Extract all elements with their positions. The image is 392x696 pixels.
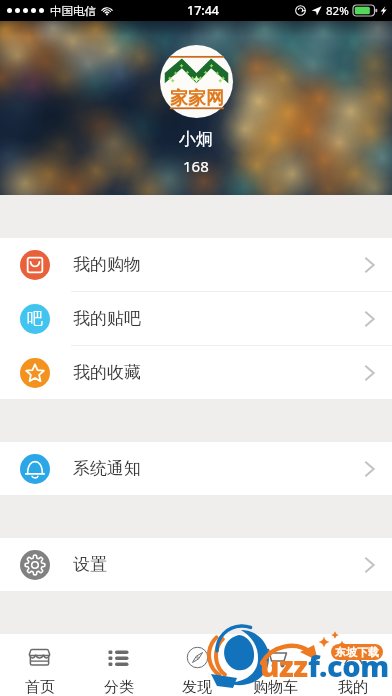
button[interactable]: 首页 — [0, 634, 79, 696]
staticText: 82% — [326, 3, 349, 19]
staticText: 首页 — [25, 678, 55, 696]
button[interactable]: 分类 — [79, 634, 158, 696]
button[interactable]: 我的 — [314, 634, 392, 696]
button[interactable]: 我的收藏 — [0, 346, 392, 399]
staticText: 我的购物 — [73, 254, 141, 275]
staticText: 我的 — [338, 678, 368, 696]
staticText: 东坡下载 — [335, 645, 379, 659]
staticText: 168 — [183, 156, 209, 176]
button[interactable]: 购物车 — [236, 634, 314, 696]
button[interactable]: 系统通知 — [0, 442, 392, 495]
staticText: f.com — [308, 646, 389, 685]
button[interactable]: 我的购物 — [0, 238, 392, 292]
staticText: 17:44 — [187, 2, 220, 19]
staticText: 设置 — [73, 554, 107, 575]
staticText: 我的贴吧 — [73, 308, 141, 329]
button[interactable]: 吧 — [0, 292, 392, 346]
staticText: 购物车 — [253, 678, 298, 696]
staticText: 吧 — [27, 309, 43, 329]
staticText: uzz — [260, 646, 308, 685]
staticText: 中国电信 — [50, 4, 96, 18]
staticText: 家家网 — [170, 87, 224, 110]
staticText: 小炯 — [179, 129, 213, 150]
staticText: 分类 — [104, 678, 134, 696]
button[interactable]: 发现 — [158, 634, 236, 696]
staticText: 发现 — [182, 678, 212, 696]
button[interactable]: 设置 — [0, 538, 392, 591]
staticText: 系统通知 — [73, 458, 141, 479]
staticText: 我的收藏 — [73, 362, 141, 383]
